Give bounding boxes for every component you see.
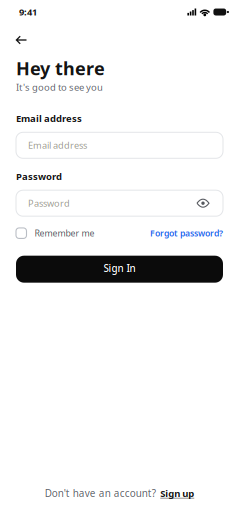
staticText: Sign In [103, 261, 135, 275]
button[interactable]: Back [16, 36, 26, 44]
staticText: Don't have an account? [45, 486, 156, 500]
button[interactable]: Sign up [160, 487, 194, 500]
staticText: Remember me [34, 227, 94, 239]
staticText: 9:41 [19, 6, 37, 18]
staticText: Sign up [160, 487, 194, 500]
button[interactable]: Forgot password? [150, 227, 223, 239]
staticText: Email address [28, 139, 87, 151]
staticText: Email address [16, 112, 82, 125]
staticText: Forgot password? [150, 227, 223, 239]
staticText: Password [16, 170, 62, 183]
button[interactable]: Remember me [16, 227, 94, 239]
staticText: Hey there [16, 56, 105, 80]
textField[interactable]: Email address [28, 139, 223, 151]
textField[interactable]: Password [28, 197, 195, 209]
staticText: It's good to see you [16, 80, 103, 93]
button[interactable]: Sign In [16, 256, 223, 283]
button[interactable]: Show password [195, 195, 211, 211]
staticText: Password [28, 197, 70, 209]
